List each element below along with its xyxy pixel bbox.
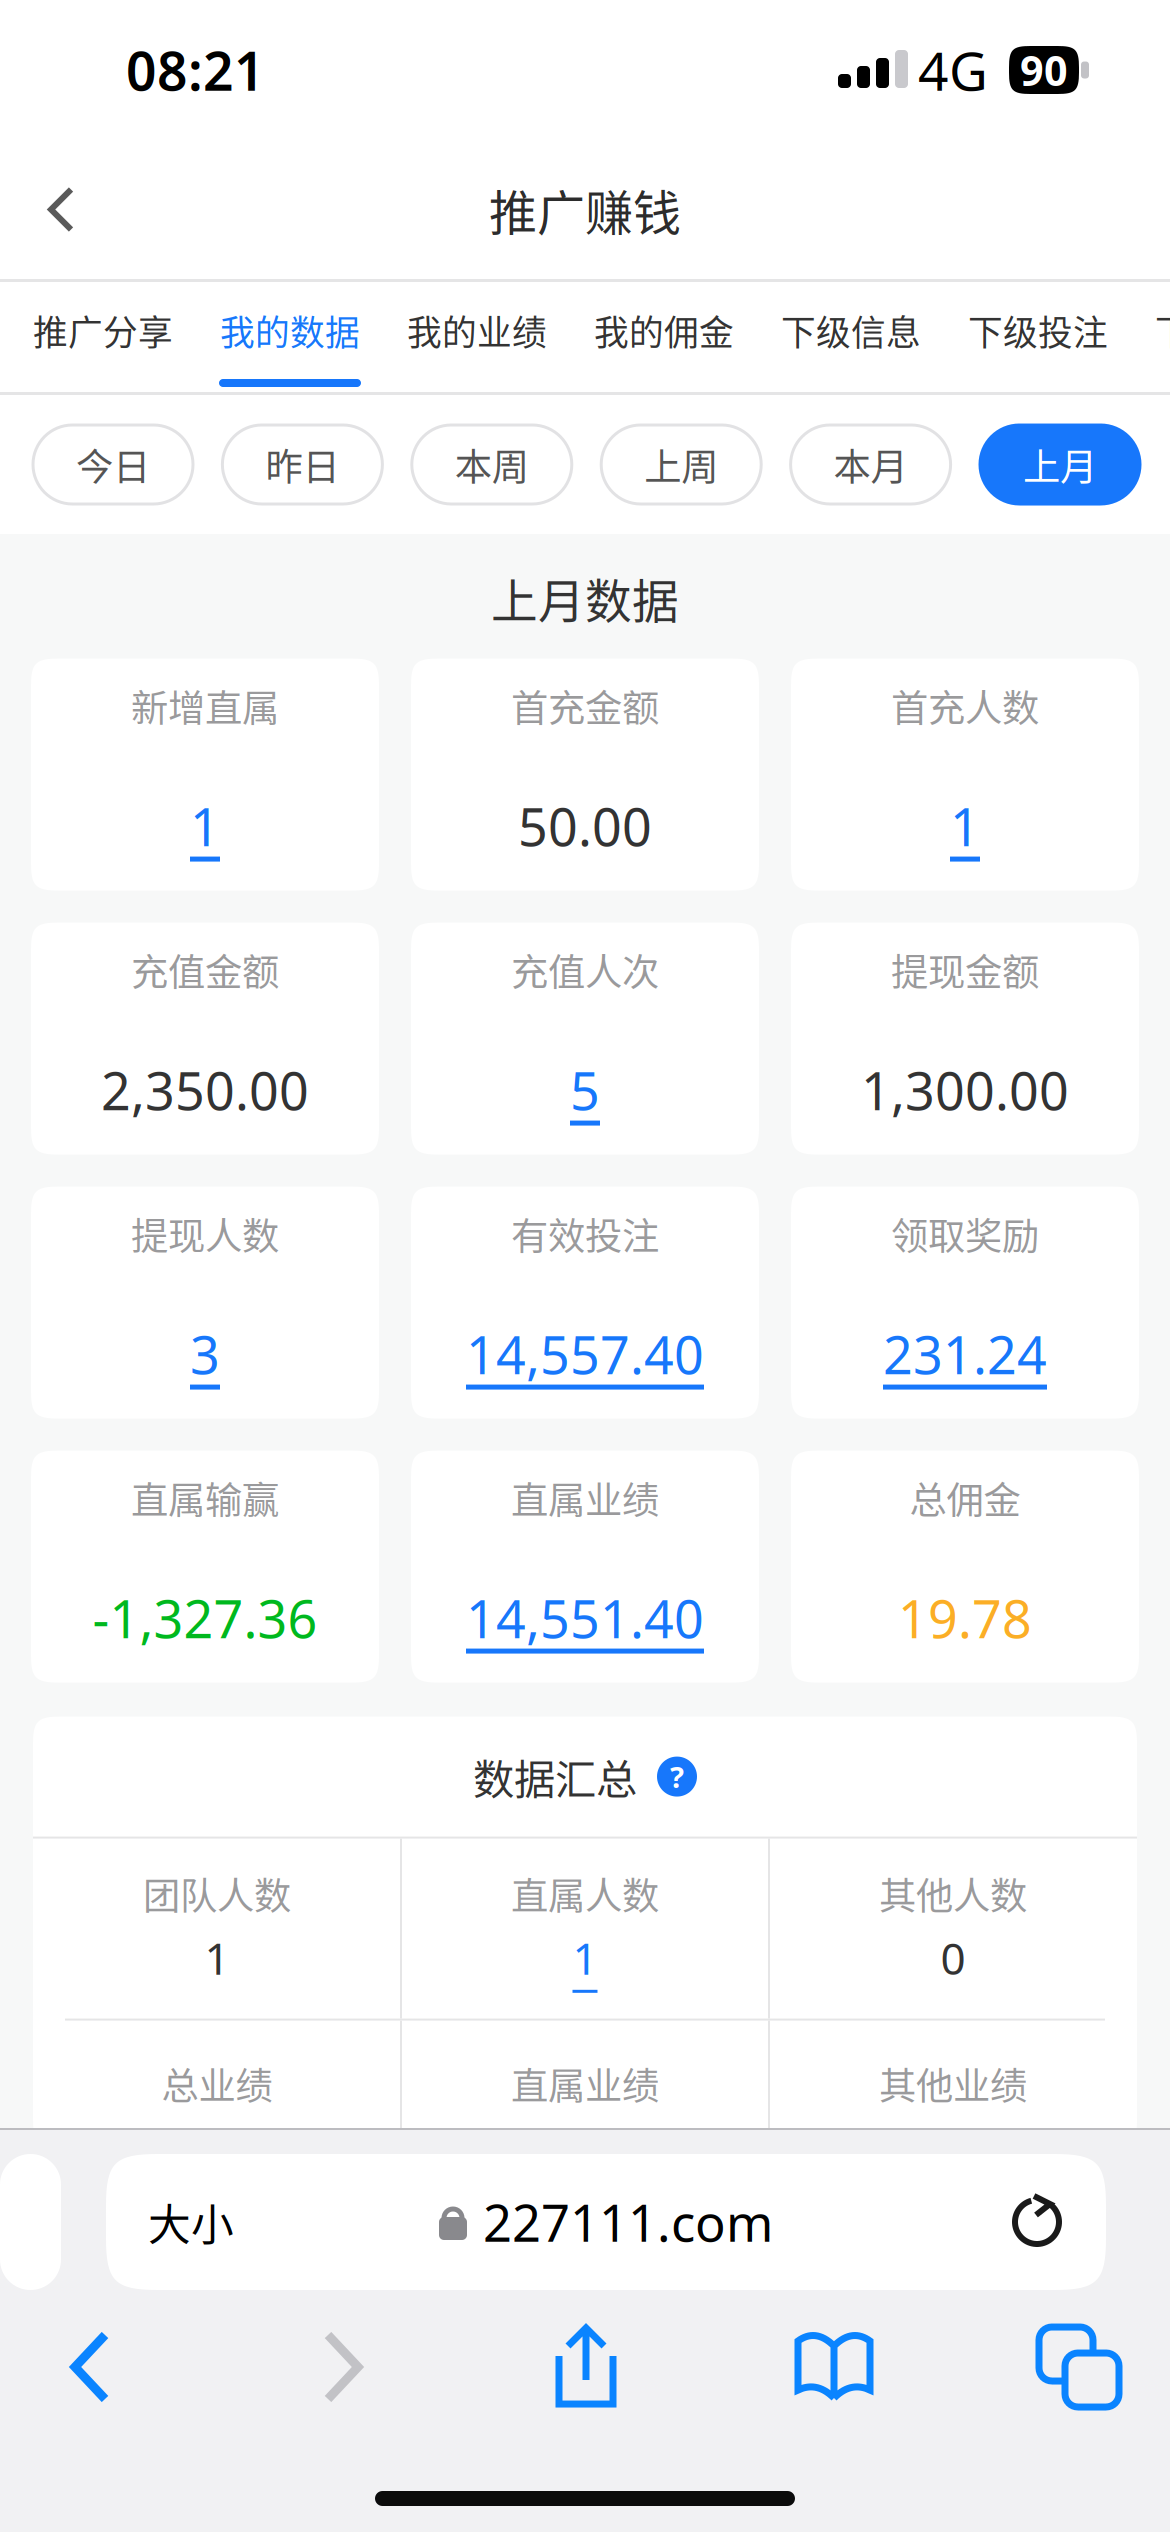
button[interactable]: Share bbox=[549, 2324, 623, 2410]
button[interactable]: Back bbox=[0, 159, 108, 259]
button[interactable]: 今日 bbox=[33, 425, 193, 504]
button[interactable]: 我的佣金 bbox=[593, 282, 735, 392]
staticText: 其他人数 bbox=[879, 1866, 1027, 1920]
button[interactable]: 我的数据 bbox=[219, 282, 361, 392]
staticText: 直属业绩 bbox=[511, 2056, 659, 2111]
staticText: 昨日 bbox=[265, 437, 339, 492]
staticText: 0 bbox=[940, 1928, 965, 1987]
button[interactable]: 下级投注 bbox=[967, 282, 1109, 392]
staticText: 1 bbox=[572, 1928, 597, 1987]
staticText: 今日 bbox=[76, 437, 150, 492]
staticText: 1 bbox=[190, 791, 220, 861]
staticText: 提现金额 bbox=[891, 943, 1039, 997]
staticText: 本月 bbox=[834, 437, 908, 492]
staticText: 首充人数 bbox=[891, 679, 1039, 733]
staticText: 直属业绩 bbox=[511, 1471, 659, 1525]
staticText: 08:21 bbox=[126, 35, 265, 105]
staticText: 下级投注 bbox=[1155, 305, 1170, 356]
staticText: 1,300.00 bbox=[861, 1055, 1069, 1125]
staticText: 90 bbox=[1020, 43, 1068, 97]
staticText: 上月数据 bbox=[491, 564, 679, 632]
staticText: 直属输赢 bbox=[131, 1471, 279, 1525]
staticText: 本周 bbox=[455, 437, 529, 492]
staticText: 14,551.40 bbox=[466, 1583, 704, 1653]
staticText: 大小 bbox=[148, 2191, 234, 2253]
button[interactable]: 推广分享 bbox=[32, 282, 174, 392]
staticText: 数据汇总 bbox=[473, 1747, 637, 1806]
button[interactable]: 本周 bbox=[412, 425, 572, 504]
staticText: 总佣金 bbox=[909, 1471, 1020, 1525]
button[interactable]: 上周 bbox=[601, 425, 761, 504]
staticText: 上周 bbox=[644, 437, 718, 492]
staticText: 有效投注 bbox=[511, 1207, 659, 1261]
staticText: 5 bbox=[570, 1055, 600, 1125]
button[interactable]: 下级信息 bbox=[780, 282, 922, 392]
staticText: 下级投注 bbox=[968, 305, 1108, 356]
button[interactable]: Tabs bbox=[1039, 2327, 1119, 2407]
staticText: 4G bbox=[918, 35, 988, 105]
staticText: 总业绩 bbox=[161, 2056, 272, 2111]
staticText: 充值人次 bbox=[511, 943, 659, 997]
staticText: 227111.com bbox=[483, 2188, 773, 2256]
staticText: 推广分享 bbox=[33, 305, 173, 356]
button[interactable]: 我的业绩 bbox=[406, 282, 548, 392]
staticText: 提现人数 bbox=[131, 1207, 279, 1261]
staticText: 我的佣金 bbox=[594, 305, 734, 356]
staticText: -1,327.36 bbox=[92, 1583, 317, 1653]
staticText: 231.24 bbox=[883, 1319, 1047, 1389]
button[interactable]: Forward bbox=[316, 2327, 370, 2407]
staticText: 2,350.00 bbox=[101, 1055, 309, 1125]
staticText: 其他业绩 bbox=[879, 2056, 1027, 2111]
staticText: 1 bbox=[950, 791, 980, 861]
button[interactable]: Back bbox=[63, 2327, 117, 2407]
button[interactable]: Bookmarks bbox=[793, 2330, 877, 2404]
staticText: 直属人数 bbox=[511, 1866, 659, 1920]
button[interactable]: 本月 bbox=[791, 425, 951, 504]
staticText: 50.00 bbox=[518, 791, 652, 861]
staticText: 新增直属 bbox=[131, 679, 279, 733]
button[interactable]: 上月 bbox=[980, 425, 1140, 504]
staticText: 我的业绩 bbox=[407, 305, 547, 356]
staticText: 领取奖励 bbox=[891, 1207, 1039, 1261]
staticText: 1 bbox=[204, 1928, 229, 1987]
staticText: 下级信息 bbox=[781, 305, 921, 356]
staticText: 充值金额 bbox=[131, 943, 279, 997]
button[interactable]: 昨日 bbox=[222, 425, 382, 504]
button[interactable]: 下级投注 bbox=[1154, 282, 1170, 392]
button[interactable]: Help bbox=[657, 1757, 697, 1797]
staticText: 3 bbox=[190, 1319, 220, 1389]
staticText: 14,557.40 bbox=[466, 1319, 704, 1389]
staticText: 我的数据 bbox=[220, 305, 360, 356]
staticText: 上月 bbox=[1023, 437, 1097, 492]
staticText: 推广赚钱 bbox=[489, 175, 681, 244]
staticText: 团队人数 bbox=[143, 1866, 291, 1920]
button[interactable]: 大小 bbox=[106, 2154, 1106, 2290]
staticText: 首充金额 bbox=[511, 679, 659, 733]
staticText: 19.78 bbox=[898, 1583, 1032, 1653]
staticText: ? bbox=[670, 1757, 684, 1796]
